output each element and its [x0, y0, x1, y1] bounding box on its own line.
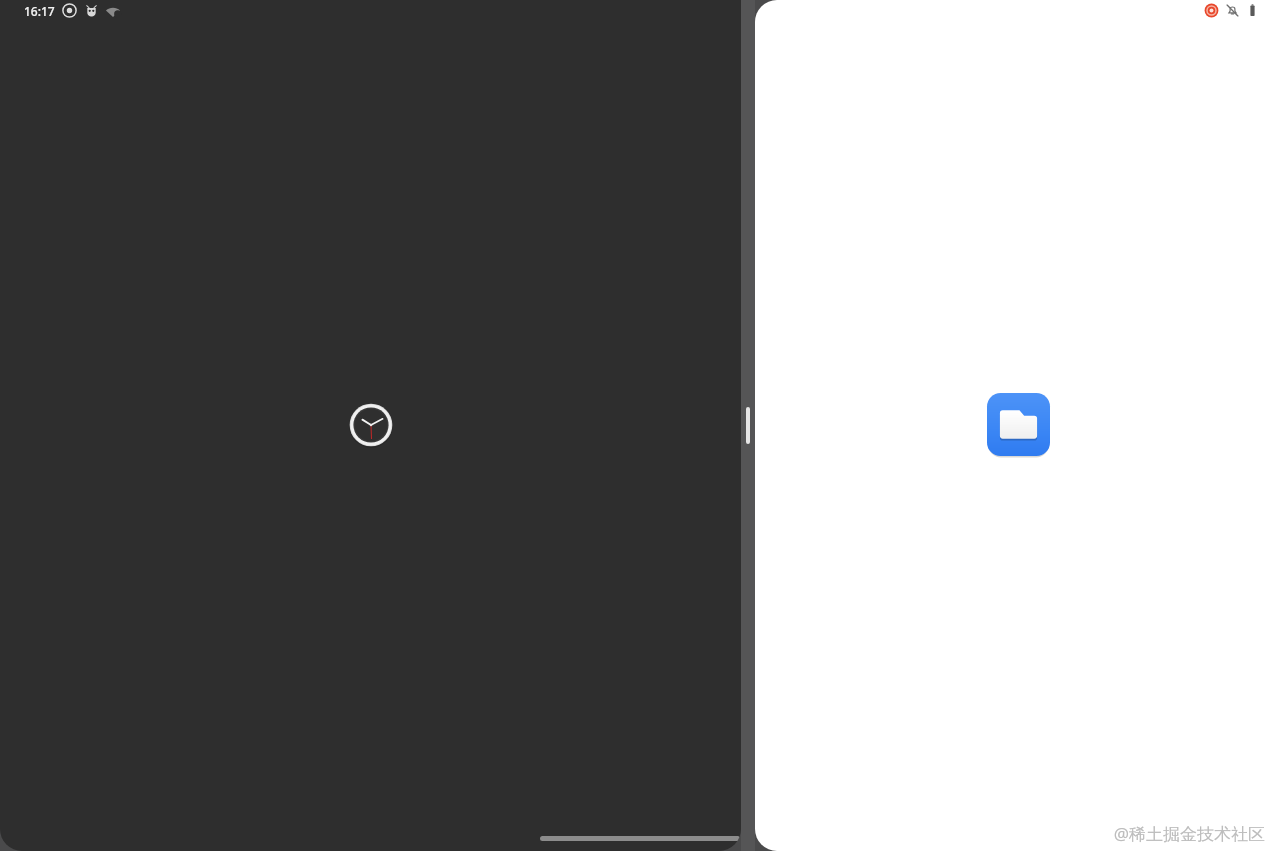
button[interactable]: Files: [987, 393, 1050, 456]
button[interactable]: [540, 836, 740, 841]
staticText: @稀土掘金技术社区: [1113, 822, 1265, 845]
button[interactable]: Clock: [349, 403, 393, 447]
button[interactable]: Resize split: [741, 0, 755, 851]
staticText: 16:17: [24, 3, 55, 19]
